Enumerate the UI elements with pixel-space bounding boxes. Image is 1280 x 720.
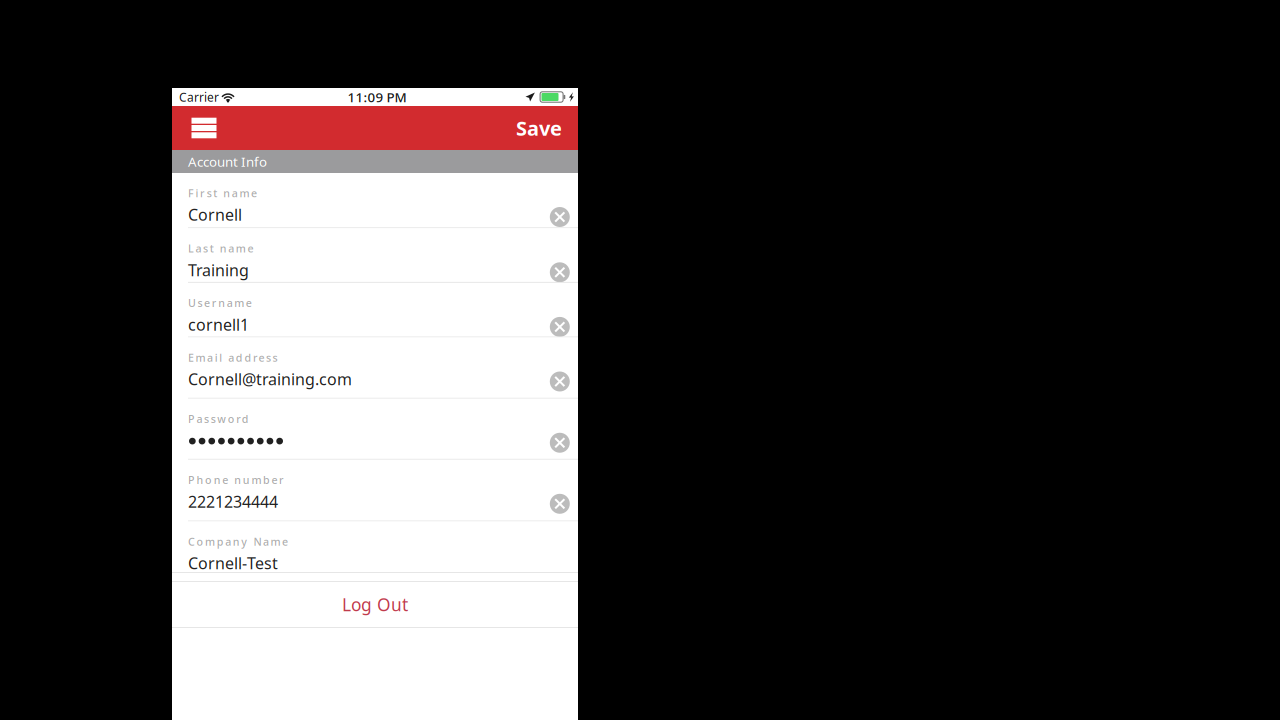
staticText: Phone number bbox=[188, 473, 284, 487]
button[interactable]: Email address bbox=[172, 337, 578, 399]
staticText: Account Info bbox=[188, 153, 267, 170]
staticText: 2221234444 bbox=[188, 491, 278, 512]
staticText: Last name bbox=[188, 241, 253, 255]
staticText: Username bbox=[188, 296, 252, 310]
button[interactable]: Password bbox=[172, 399, 578, 460]
staticText: Cornell-Test bbox=[188, 552, 278, 574]
staticText: 11:09 PM bbox=[347, 88, 406, 106]
button[interactable]: Menu bbox=[182, 106, 226, 150]
button[interactable]: First name bbox=[172, 173, 578, 228]
button[interactable]: Clear text bbox=[542, 254, 578, 290]
staticText: Save bbox=[516, 115, 562, 141]
button[interactable]: Company Name bbox=[172, 521, 578, 573]
button[interactable]: Clear text bbox=[542, 425, 578, 461]
button[interactable]: Username bbox=[172, 283, 578, 337]
staticText: Cornell bbox=[188, 204, 242, 225]
button[interactable]: Log Out bbox=[172, 582, 578, 627]
staticText: Cornell@training.com bbox=[188, 368, 352, 390]
button[interactable]: Clear text bbox=[542, 309, 578, 345]
staticText: Email address bbox=[188, 350, 278, 365]
button[interactable]: Clear text bbox=[542, 486, 578, 522]
button[interactable]: Phone number bbox=[172, 460, 578, 521]
staticText: First name bbox=[188, 186, 257, 200]
staticText: Log Out bbox=[342, 593, 408, 616]
staticText: cornell1 bbox=[188, 314, 249, 335]
button[interactable]: Save bbox=[500, 106, 562, 150]
staticText: Password bbox=[188, 412, 249, 426]
button[interactable]: Clear text bbox=[542, 199, 578, 235]
button[interactable]: Last name bbox=[172, 228, 578, 283]
staticText: Training bbox=[188, 259, 249, 280]
button[interactable]: Clear text bbox=[542, 363, 578, 399]
staticText: Company Name bbox=[188, 534, 288, 549]
staticText: Carrier bbox=[179, 89, 219, 105]
